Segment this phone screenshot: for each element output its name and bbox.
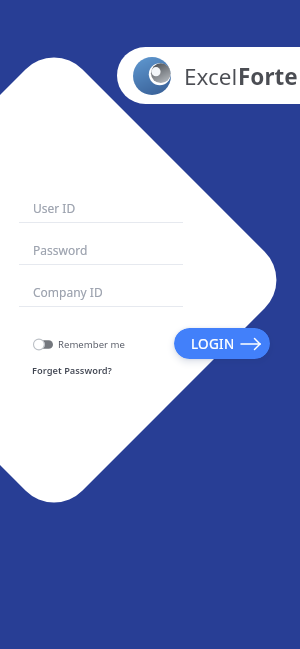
staticText: Excel xyxy=(184,61,238,92)
staticText: LOGIN xyxy=(191,335,235,353)
staticText: Forget Password? xyxy=(32,364,112,377)
button[interactable]: User ID xyxy=(19,200,183,223)
staticText: Company ID xyxy=(33,284,103,300)
other: Remember me toggle, off xyxy=(33,338,54,351)
button[interactable]: LOGIN xyxy=(174,328,270,359)
button[interactable]: Forget Password? xyxy=(32,364,112,377)
other: ExcelForte logo xyxy=(133,57,171,95)
staticText: Password xyxy=(33,242,88,258)
button[interactable]: Company ID xyxy=(19,284,183,307)
button[interactable]: ExcelForte logo xyxy=(117,47,300,104)
staticText: User ID xyxy=(33,200,76,216)
staticText: Forte xyxy=(238,61,298,92)
button[interactable]: Remember me toggle, off xyxy=(33,338,125,351)
staticText: Remember me xyxy=(58,338,125,351)
button[interactable]: Password xyxy=(19,242,183,265)
